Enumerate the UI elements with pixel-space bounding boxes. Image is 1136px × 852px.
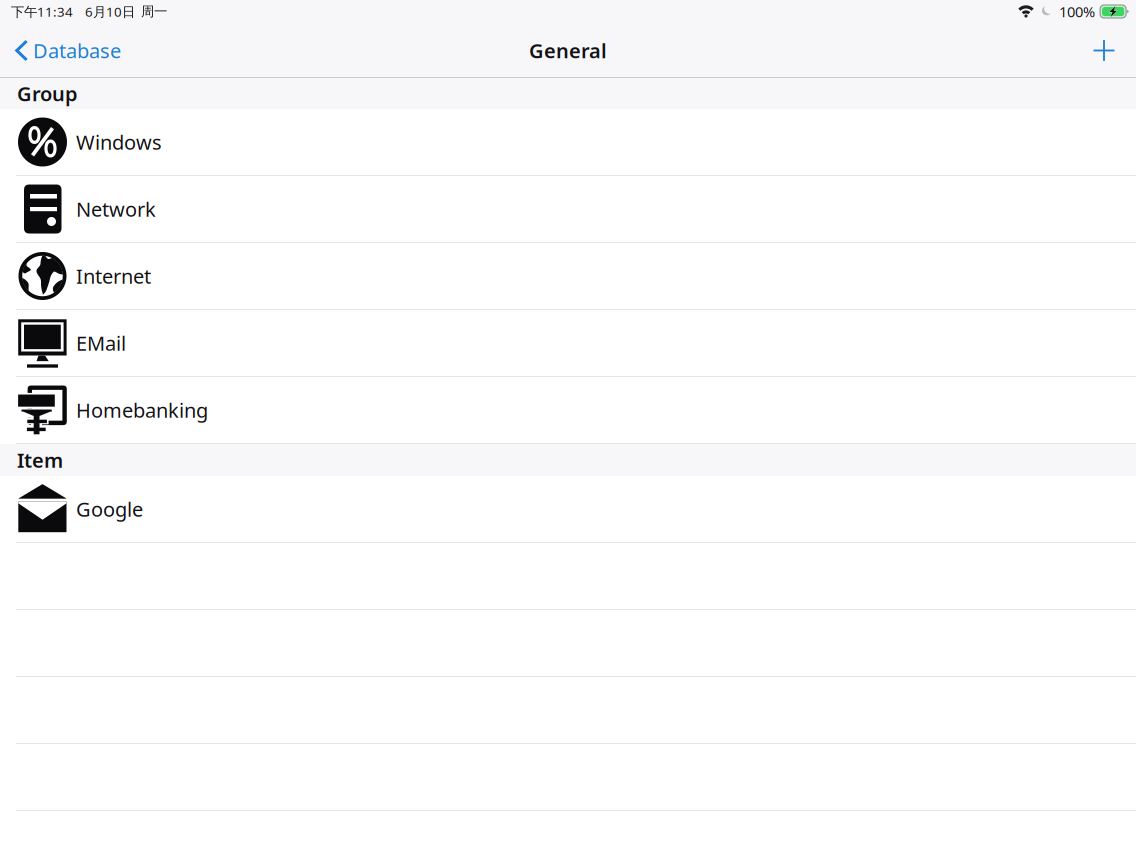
staticText: Google (76, 496, 143, 522)
button[interactable]: Network (0, 176, 1136, 243)
staticText: Group (17, 80, 78, 107)
staticText: Internet (76, 263, 151, 289)
button[interactable]: Homebanking (0, 377, 1136, 444)
staticText: General (529, 37, 607, 64)
button[interactable]: Internet (0, 243, 1136, 310)
staticText: EMail (76, 330, 126, 356)
staticText: Item (17, 447, 63, 473)
button[interactable]: Database (0, 23, 131, 78)
button[interactable]: Add (1079, 23, 1136, 78)
staticText: 100% (1059, 2, 1095, 21)
staticText: 6月10日 (85, 3, 135, 20)
staticText: 下午11:34 (11, 3, 73, 20)
staticText: Database (33, 37, 121, 64)
button[interactable]: Windows (0, 109, 1136, 176)
button[interactable]: EMail (0, 310, 1136, 377)
staticText: Network (76, 196, 156, 222)
button[interactable]: Google (0, 476, 1136, 543)
staticText: 周一 (141, 3, 167, 20)
staticText: Homebanking (76, 397, 208, 423)
staticText: Windows (76, 129, 162, 155)
